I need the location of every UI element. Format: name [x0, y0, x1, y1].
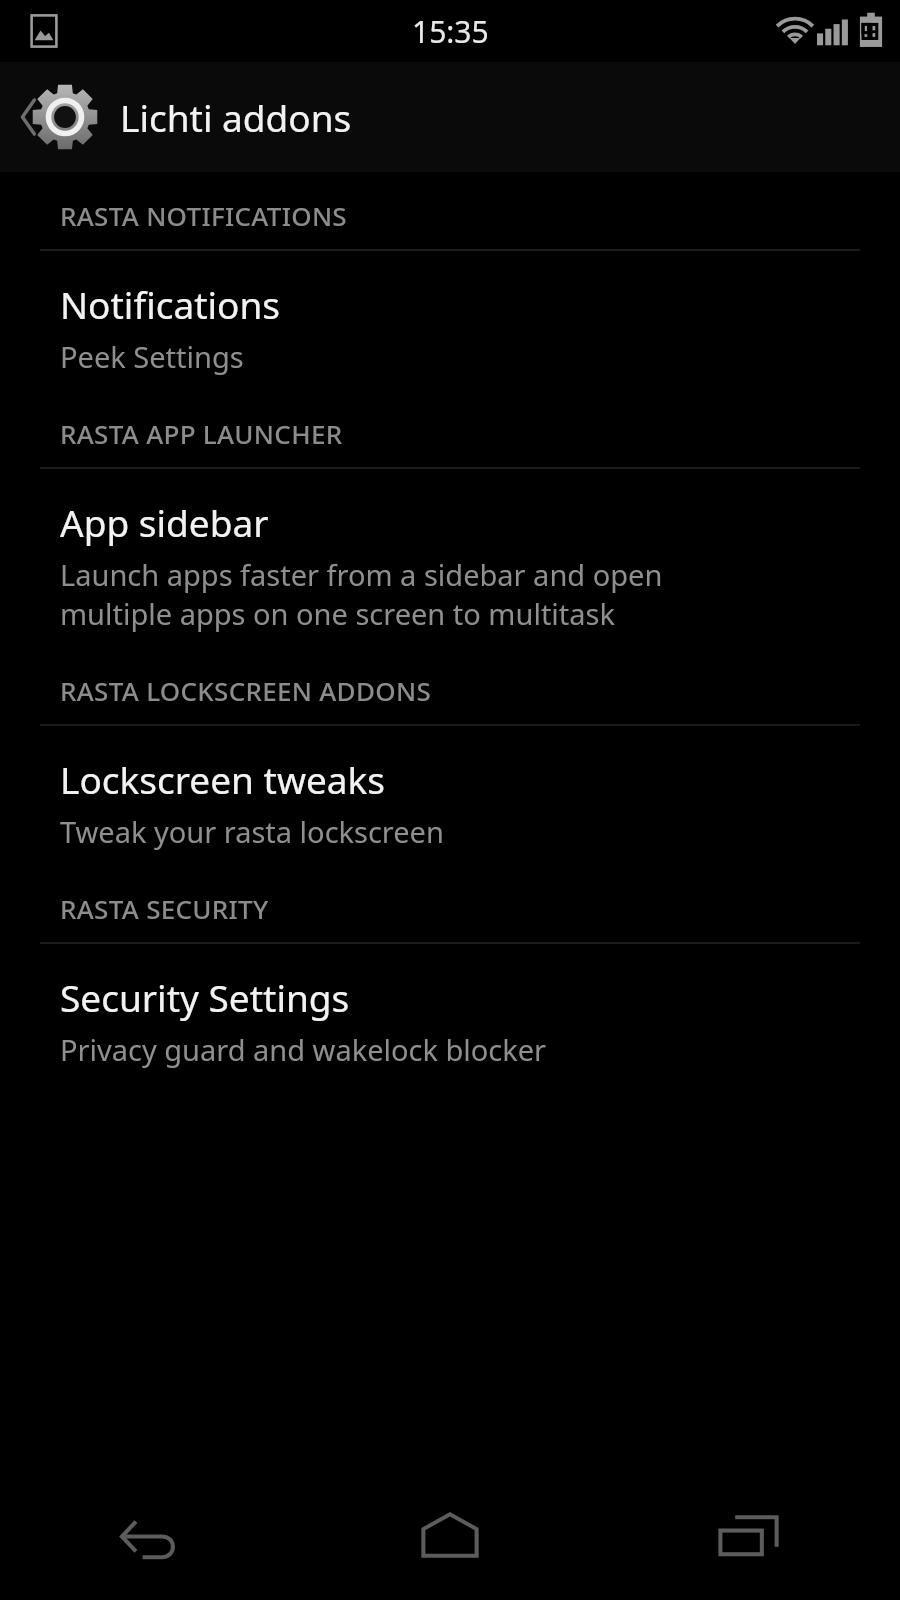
staticText: Launch apps faster from a sidebar and op… [60, 555, 663, 594]
button[interactable]: Recent apps [600, 1470, 900, 1600]
button[interactable]: Back [0, 1470, 300, 1600]
staticText: Notifications [60, 279, 281, 329]
staticText: 15:35 [412, 11, 489, 52]
staticText: Lichti addons [120, 92, 352, 142]
staticText: Lockscreen tweaks [60, 754, 386, 804]
staticText: RASTA NOTIFICATIONS [60, 198, 347, 233]
staticText: Privacy guard and wakelock blocker [60, 1030, 547, 1069]
button[interactable]: Navigate up [10, 67, 110, 167]
button[interactable]: Home [300, 1470, 600, 1600]
button[interactable]: Notifications [0, 251, 900, 390]
staticText: RASTA LOCKSCREEN ADDONS [60, 673, 431, 708]
button[interactable]: Security Settings [0, 944, 900, 1083]
button[interactable]: Lockscreen tweaks [0, 726, 900, 865]
staticText: App sidebar [60, 497, 269, 547]
staticText: Peek Settings [60, 337, 244, 376]
button[interactable]: Navigate up [0, 62, 900, 172]
staticText: RASTA APP LAUNCHER [60, 416, 343, 451]
staticText: multiple apps on one screen to multitask [60, 594, 615, 633]
button[interactable]: App sidebar [0, 469, 900, 647]
staticText: RASTA SECURITY [60, 891, 269, 926]
staticText: Security Settings [60, 972, 350, 1022]
staticText: Tweak your rasta lockscreen [60, 812, 444, 851]
